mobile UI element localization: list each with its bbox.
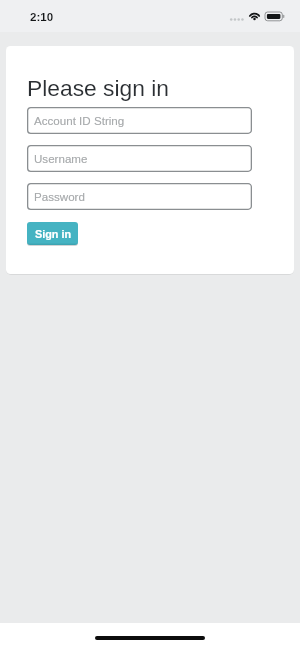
staticText: Username [34,152,88,165]
staticText: Password [34,190,85,203]
staticText: Sign in [35,228,71,240]
button[interactable]: Username [27,145,252,172]
button[interactable]: Account ID String [27,107,252,134]
staticText: Please sign in [27,75,169,100]
staticText: Account ID String [34,114,125,127]
other: Home indicator [95,636,205,640]
other: Wi-Fi signal [248,10,261,21]
button[interactable]: Password [27,183,252,210]
button[interactable]: Sign in [27,222,78,245]
staticText: 2:10 [30,10,54,23]
other: Battery full [265,12,285,21]
